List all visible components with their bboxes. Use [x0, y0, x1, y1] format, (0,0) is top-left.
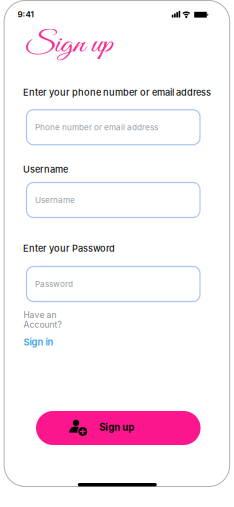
button[interactable]: Phone number or email address — [26, 110, 200, 145]
staticText: Password — [35, 279, 73, 289]
staticText: Sign up — [99, 421, 134, 433]
staticText: Username — [35, 195, 75, 205]
button[interactable]: Sign in — [23, 336, 143, 348]
button[interactable]: Password — [26, 266, 200, 301]
button[interactable]: Username — [26, 182, 200, 217]
staticText: Sign in — [23, 336, 53, 348]
staticText: 9:41 — [17, 9, 33, 19]
staticText: Enter your Password — [23, 243, 115, 254]
staticText: Username — [23, 164, 68, 175]
staticText: Account? — [23, 319, 61, 330]
staticText: Sign up — [29, 27, 108, 64]
button[interactable]: Sign up — [36, 411, 200, 445]
staticText: Phone number or email address — [35, 122, 158, 132]
staticText: Have an — [23, 310, 56, 320]
staticText: Enter your phone number or email address — [23, 87, 211, 98]
